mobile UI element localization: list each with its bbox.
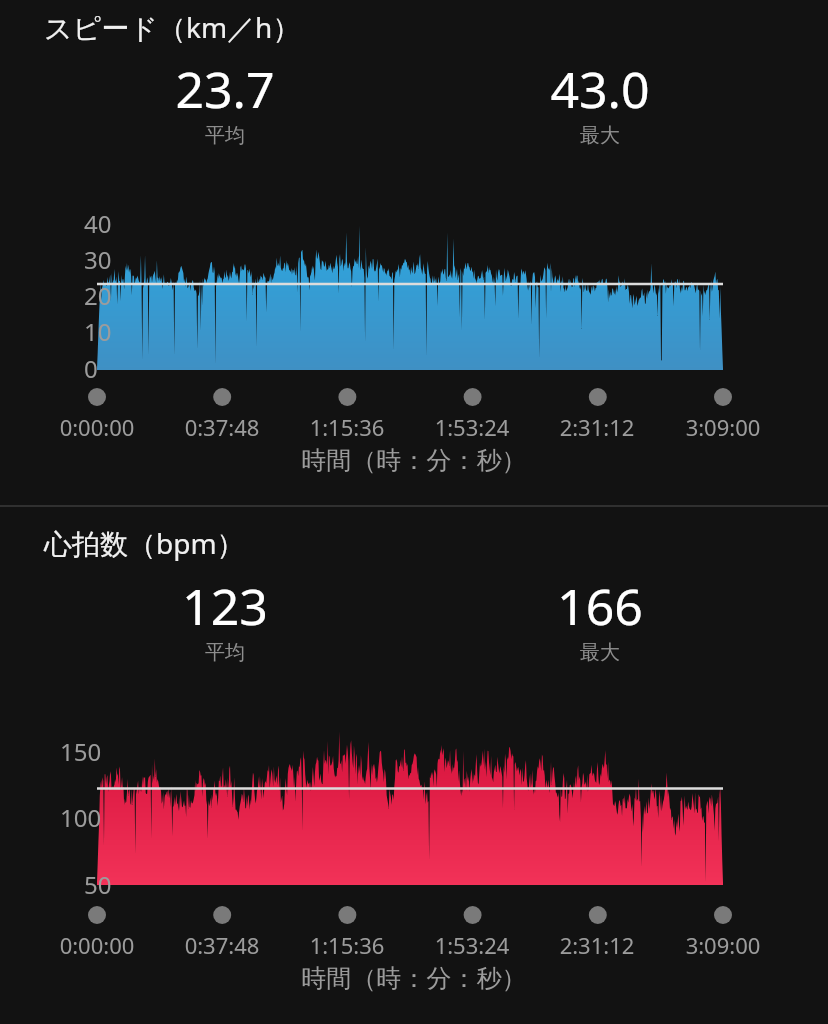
staticText: 100	[60, 801, 102, 834]
staticText: 2:31:12	[527, 412, 667, 442]
staticText: 123	[182, 572, 268, 640]
button[interactable]: スピード（km／h）	[44, 8, 301, 46]
button[interactable]: 23.7	[95, 55, 355, 148]
staticText: 時間（時：分：秒）	[0, 445, 828, 476]
button[interactable]: 心拍数（bpm）	[44, 524, 245, 562]
staticText: 3:09:00	[653, 930, 793, 960]
staticText: 時間（時：分：秒）	[0, 963, 828, 994]
staticText: 30	[84, 243, 112, 276]
staticText: 1:53:24	[402, 412, 542, 442]
staticText: 10	[84, 315, 112, 348]
staticText: 2:31:12	[527, 930, 667, 960]
staticText: 23.7	[175, 55, 275, 123]
staticText: 166	[557, 572, 643, 640]
staticText: 最大	[580, 640, 620, 665]
staticText: 1:15:36	[277, 930, 417, 960]
button[interactable]: 123	[95, 572, 355, 665]
button[interactable]: 43.0	[470, 55, 730, 148]
staticText: 最大	[580, 123, 620, 148]
staticText: 1:53:24	[402, 930, 542, 960]
staticText: 0:00:00	[27, 412, 167, 442]
staticText: 0:37:48	[152, 930, 292, 960]
staticText: 平均	[205, 123, 245, 148]
staticText: 1:15:36	[277, 412, 417, 442]
staticText: 0	[84, 352, 98, 385]
staticText: 50	[84, 868, 112, 901]
staticText: 40	[84, 207, 112, 240]
staticText: 150	[60, 735, 102, 768]
staticText: 0:37:48	[152, 412, 292, 442]
staticText: 43.0	[550, 55, 650, 123]
button[interactable]: 166	[470, 572, 730, 665]
staticText: 0:00:00	[27, 930, 167, 960]
staticText: 20	[84, 279, 112, 312]
staticText: 3:09:00	[653, 412, 793, 442]
staticText: 平均	[205, 640, 245, 665]
